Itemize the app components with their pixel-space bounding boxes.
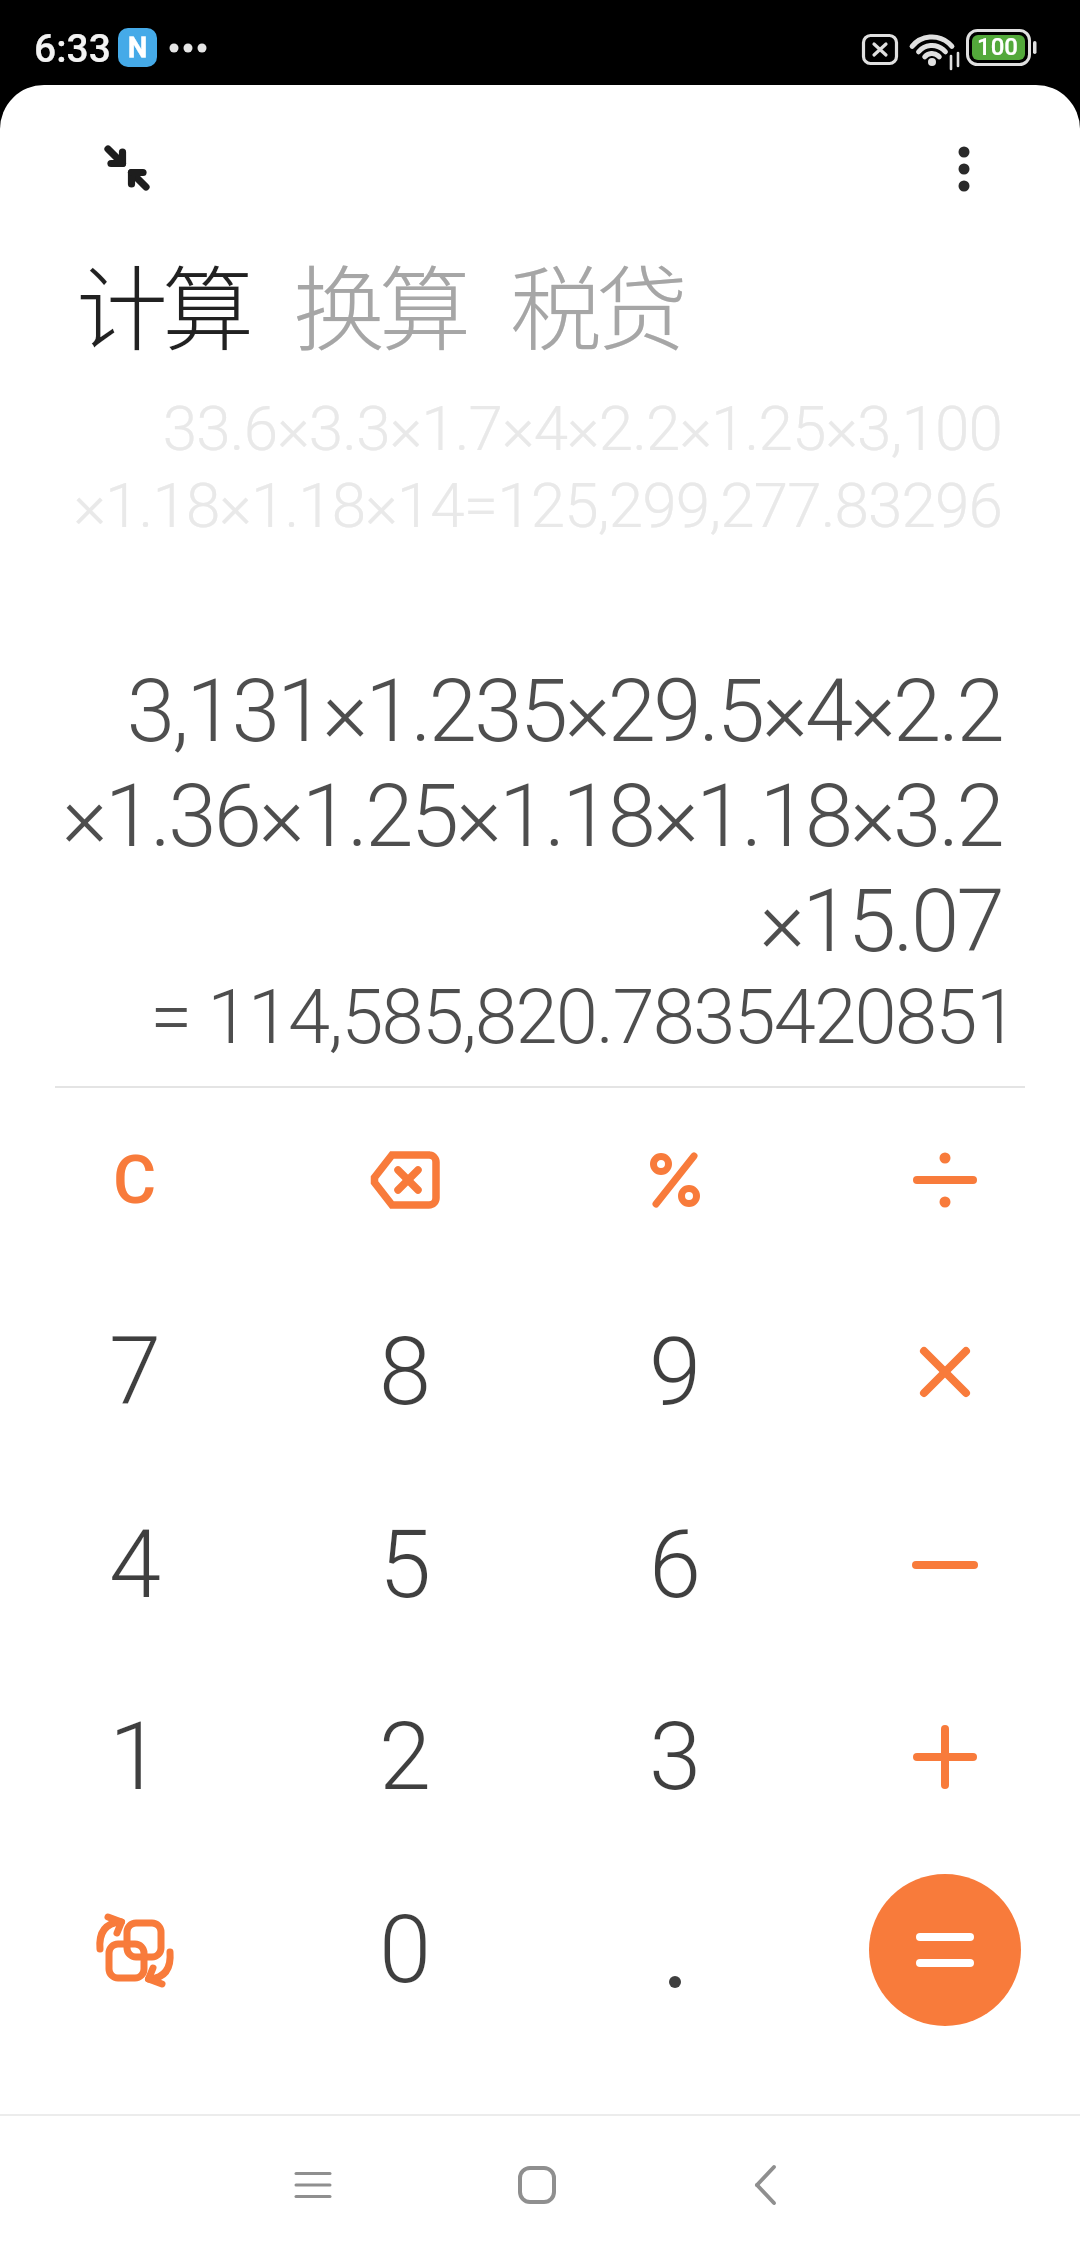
button[interactable]: 9 — [540, 1276, 810, 1468]
staticText: 4 — [109, 1510, 162, 1620]
button[interactable]: 5 — [270, 1469, 540, 1661]
staticText: 5 — [379, 1510, 432, 1620]
button[interactable] — [810, 1276, 1080, 1468]
button[interactable]: 计算 — [76, 236, 249, 369]
button[interactable] — [928, 133, 1000, 205]
staticText: 100 — [977, 33, 1018, 61]
staticText: 6:33 — [34, 26, 111, 72]
button[interactable] — [705, 2125, 825, 2245]
staticText: 7 — [109, 1317, 162, 1427]
staticText: = 114,585,820.7835420851 — [0, 972, 1016, 1061]
button[interactable] — [540, 1084, 810, 1276]
button[interactable]: 4 — [0, 1469, 270, 1661]
button[interactable] — [253, 2125, 373, 2245]
button[interactable]: 换算 — [293, 236, 466, 369]
staticText: 税贷 — [510, 236, 683, 369]
staticText: 6 — [649, 1510, 702, 1620]
button[interactable]: 税贷 — [510, 236, 683, 369]
button[interactable]: 7 — [0, 1276, 270, 1468]
staticText: 33.6×3.3×1.7×4×2.2×1.25×3,100 ×1.18×1.18… — [0, 392, 1002, 542]
staticText: 计算 — [76, 236, 249, 369]
button[interactable] — [477, 2125, 597, 2245]
button[interactable] — [0, 1854, 270, 2046]
staticText: 换算 — [293, 236, 466, 369]
button[interactable] — [85, 126, 169, 210]
button[interactable]: 1 — [0, 1661, 270, 1853]
button[interactable] — [810, 1661, 1080, 1853]
staticText: 1 — [109, 1702, 162, 1812]
button[interactable] — [540, 1854, 810, 2046]
button[interactable]: 6 — [540, 1469, 810, 1661]
button[interactable] — [810, 1084, 1080, 1276]
button[interactable]: 0 — [270, 1854, 540, 2046]
staticText: 3 — [649, 1702, 702, 1812]
button[interactable]: C — [0, 1084, 270, 1276]
staticText: N — [128, 32, 148, 64]
button[interactable] — [810, 1469, 1080, 1661]
staticText: 8 — [379, 1317, 432, 1427]
staticText: 2 — [379, 1702, 432, 1812]
button[interactable] — [869, 1874, 1021, 2026]
staticText: C — [113, 1142, 157, 1219]
button[interactable]: 3 — [540, 1661, 810, 1853]
button[interactable] — [270, 1084, 540, 1276]
button[interactable]: 8 — [270, 1276, 540, 1468]
staticText: 9 — [649, 1317, 702, 1427]
button[interactable]: 2 — [270, 1661, 540, 1853]
staticText: 3,131×1.235×29.5×4×2.2 ×1.36×1.25×1.18×1… — [0, 660, 1002, 972]
staticText: 0 — [379, 1895, 432, 2005]
